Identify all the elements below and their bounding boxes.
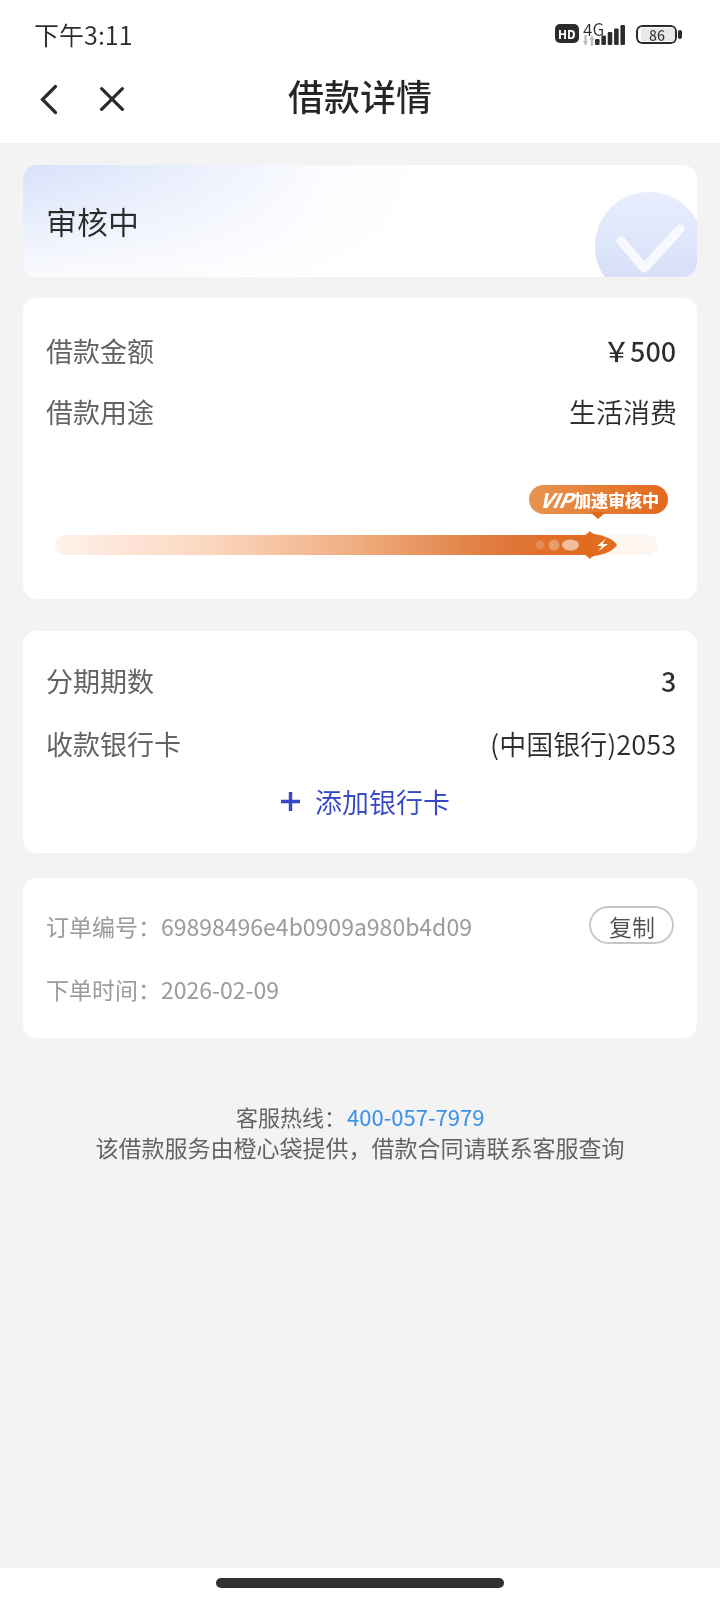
staticText: 4G <box>583 16 605 41</box>
button[interactable]: 复制 <box>589 906 674 944</box>
staticText: 借款用途 <box>46 392 154 431</box>
staticText: 该借款服务由橙心袋提供，借款合同请联系客服查询 <box>0 1130 720 1163</box>
staticText: VIP <box>539 485 572 514</box>
staticText: 客服热线： <box>236 1100 347 1132</box>
button[interactable]: Back <box>25 75 73 123</box>
staticText: 3 <box>661 661 677 700</box>
staticText: 生活消费 <box>569 392 677 431</box>
staticText: 审核中 <box>46 198 139 243</box>
button[interactable]: 添加银行卡 <box>28 782 697 821</box>
staticText: (中国银行)2053 <box>490 724 677 763</box>
staticText: 复制 <box>609 909 655 942</box>
staticText: 加速审核中 <box>574 487 659 512</box>
staticText: 分期期数 <box>46 661 154 700</box>
staticText: 下午3:11 <box>34 16 133 52</box>
staticText: 订单编号：69898496e4b0909a980b4d09 <box>46 909 472 942</box>
staticText: 借款金额 <box>46 331 154 370</box>
staticText: 借款详情 <box>288 69 433 121</box>
button[interactable]: 400-057-7979 <box>347 1100 485 1132</box>
staticText: 下单时间：2026-02-09 <box>46 972 280 1005</box>
staticText: HD <box>558 25 576 42</box>
button[interactable]: Close <box>88 75 136 123</box>
staticText: 添加银行卡 <box>315 782 450 821</box>
staticText: 收款银行卡 <box>46 724 181 763</box>
staticText: 86 <box>649 25 665 44</box>
staticText: ￥500 <box>603 331 677 370</box>
